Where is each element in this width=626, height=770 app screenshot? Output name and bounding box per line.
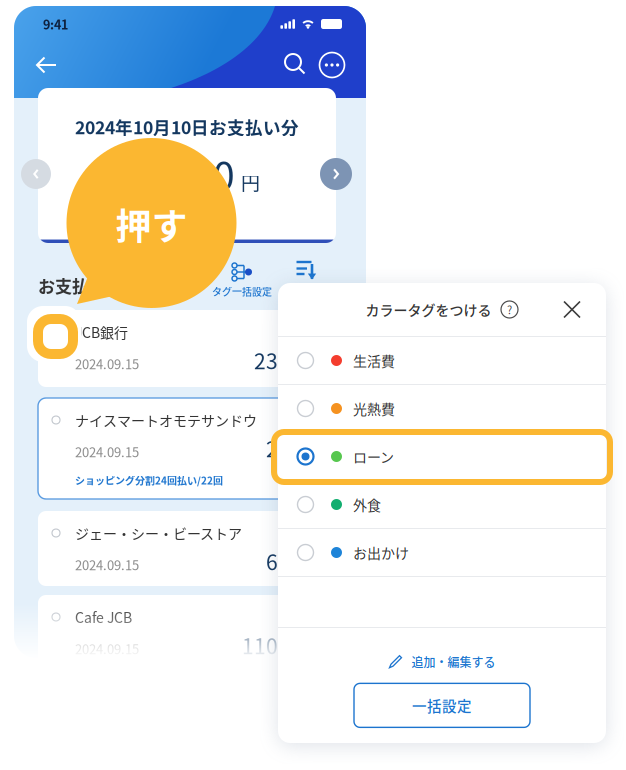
staticText: お出かけ (353, 542, 409, 563)
staticText: 2024年10月10日お支払い分 (75, 114, 299, 139)
button[interactable]: Close (554, 291, 590, 327)
staticText: JCB銀行 (75, 322, 128, 342)
staticText: 23,340 (254, 345, 320, 375)
staticText: 2024.09.15 (75, 555, 139, 574)
staticText: 月ごとの推移 (142, 212, 220, 231)
staticText: 外食 (353, 494, 381, 515)
staticText: お支払 (38, 273, 89, 298)
staticText: ジェー・シー・ビーストア (75, 523, 242, 543)
button[interactable]: Back (28, 48, 65, 81)
button[interactable]: Search (278, 47, 314, 83)
staticText: ローン (353, 446, 394, 467)
staticText: 光熱費 (353, 398, 395, 419)
button[interactable]: ローン (278, 433, 606, 480)
button[interactable]: 外食 (278, 481, 606, 528)
staticText: 6,340 (266, 546, 320, 576)
staticText: 押す (115, 198, 187, 250)
button[interactable]: ジェー・シー・ビーストア (38, 511, 336, 586)
staticText: ? (507, 301, 512, 317)
staticText: 円 (241, 168, 260, 196)
button[interactable]: お出かけ (278, 529, 606, 576)
staticText: 110,340 (242, 630, 320, 660)
staticText: 生活費 (353, 350, 395, 371)
button[interactable]: タグ一括設定 (212, 263, 272, 298)
staticText: 2024.09.15 (75, 639, 139, 658)
button[interactable]: 生活費 (278, 337, 606, 384)
button[interactable]: 一括設定 (354, 683, 530, 727)
staticText: Cafe JCB (75, 607, 132, 627)
staticText: 追加・編集する (411, 653, 495, 670)
staticText: 2024.09.15 (75, 354, 139, 373)
staticText: 2,340 (266, 433, 320, 463)
staticText: 23,000 (114, 145, 235, 202)
staticText: 一括設定 (412, 695, 472, 716)
staticText: カラータグをつける (365, 299, 491, 320)
button[interactable]: 光熱費 (278, 385, 606, 432)
staticText: ナイスマートオモテサンドウ (75, 410, 257, 430)
button[interactable]: Next month (320, 158, 352, 190)
button[interactable]: 追加・編集する (376, 646, 507, 677)
staticText: タグ一括設定 (212, 284, 272, 298)
button[interactable]: ナイスマートオモテサンドウ (38, 398, 336, 499)
staticText: 2024.09.15 (75, 442, 139, 461)
staticText: 9:41 (43, 15, 68, 33)
button[interactable]: JCB銀行 (38, 310, 336, 387)
button[interactable]: More (314, 47, 350, 83)
button[interactable]: Previous month (21, 159, 51, 189)
staticText: ショッピング分割24回払い/22回 (75, 473, 223, 487)
button[interactable]: Sort (292, 256, 321, 284)
button[interactable]: 月ごとの推移 (142, 202, 231, 231)
button[interactable]: Cafe JCB (38, 595, 336, 670)
